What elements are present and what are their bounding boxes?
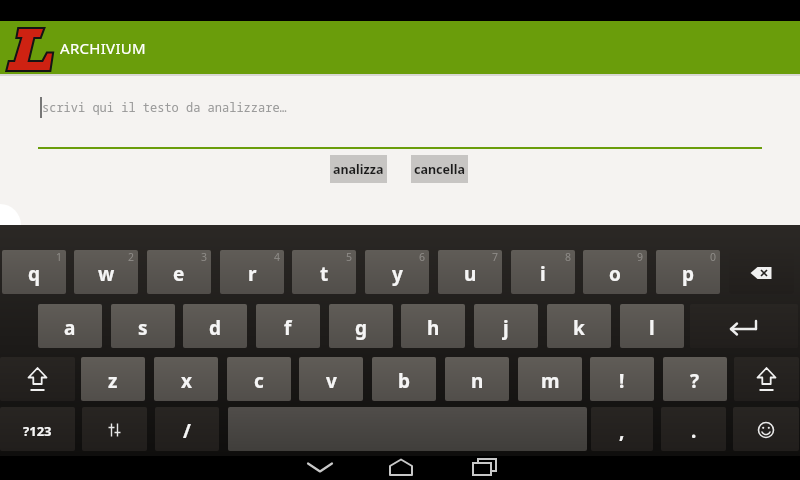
staticText: ! [619,368,625,394]
staticText: u [464,261,477,287]
button[interactable]: h [401,304,465,348]
button[interactable]: f [256,304,320,348]
staticText: x [181,368,192,394]
button[interactable]: c [227,357,291,401]
button[interactable]: t [292,250,356,294]
button[interactable]: o [583,250,647,294]
staticText: 9 [637,250,644,264]
staticText: g [355,315,368,341]
staticText: p [682,261,695,287]
button[interactable]: / [155,407,219,451]
staticText: 3 [201,250,208,264]
button[interactable]: s [111,304,175,348]
staticText: 8 [565,250,572,264]
button[interactable]: ?123 [0,407,75,451]
staticText: i [540,261,546,287]
button[interactable]: ? [663,357,727,401]
button[interactable]: q [2,250,66,294]
staticText: a [64,315,76,341]
button[interactable] [734,357,799,401]
button[interactable]: n [445,357,509,401]
staticText: z [108,368,118,394]
button[interactable] [690,304,798,348]
button[interactable]: w [74,250,138,294]
staticText: ? [690,368,700,394]
staticText: h [427,315,440,341]
staticText: . [691,418,697,444]
button[interactable]: . [661,407,726,451]
staticText: f [284,315,292,341]
button[interactable] [733,407,799,451]
staticText: 6 [419,250,426,264]
staticText: t [320,261,329,287]
staticText: , [619,418,625,444]
button[interactable] [0,357,75,401]
button[interactable]: cancella [411,155,468,183]
button[interactable]: a [38,304,102,348]
staticText: w [98,261,115,287]
staticText: q [28,261,41,287]
button[interactable]: r [220,250,284,294]
staticText: 1 [56,250,63,264]
button[interactable]: y [365,250,429,294]
button[interactable]: b [372,357,436,401]
staticText: / [183,418,191,444]
button[interactable] [82,407,147,451]
button[interactable]: scrivi qui il testo da analizzare… [38,88,762,149]
button[interactable]: ! [590,357,654,401]
staticText: scrivi qui il testo da analizzare… [42,99,287,115]
button[interactable]: m [518,357,582,401]
button[interactable]: l [620,304,684,348]
staticText: r [248,261,257,287]
button[interactable]: j [474,304,538,348]
button[interactable]: e [147,250,211,294]
staticText: n [471,368,484,394]
button[interactable]: k [547,304,611,348]
staticText: cancella [414,161,465,178]
staticText: l [649,315,655,341]
staticText: 7 [492,250,499,264]
button[interactable]: , [591,407,653,451]
staticText: o [609,261,621,287]
staticText: 4 [274,250,281,264]
button[interactable]: d [183,304,247,348]
staticText: k [573,315,585,341]
staticText: 0 [710,250,717,264]
staticText: ?123 [23,422,52,440]
staticText: b [398,368,411,394]
button[interactable]: g [329,304,393,348]
staticText: 5 [346,250,353,264]
staticText: 2 [128,250,135,264]
button[interactable]: p [656,250,720,294]
button[interactable]: u [438,250,502,294]
staticText: m [541,368,560,394]
button[interactable]: i [511,250,575,294]
button[interactable] [228,407,587,451]
staticText: j [503,315,509,341]
staticText: v [326,368,337,394]
staticText: y [392,261,403,287]
staticText: analizza [333,161,384,178]
staticText: e [173,261,185,287]
button[interactable] [729,250,794,294]
staticText: d [209,315,222,341]
staticText: s [138,315,148,341]
button[interactable]: z [81,357,145,401]
staticText: c [254,368,264,394]
button[interactable]: v [299,357,363,401]
staticText: ARCHIVIUM [60,38,146,58]
button[interactable]: analizza [330,155,387,183]
button[interactable]: x [154,357,218,401]
